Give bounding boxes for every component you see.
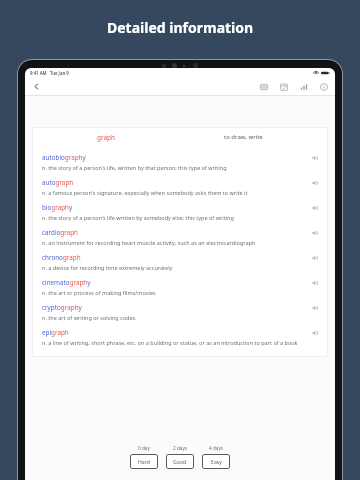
staticText: Hard	[138, 458, 150, 465]
staticText: Detailed information	[107, 18, 254, 37]
button[interactable]: Pronounce biography	[310, 203, 320, 213]
staticText: n. a famous person's signature, especial…	[42, 189, 248, 196]
button[interactable]: cardiograph	[32, 225, 328, 250]
button[interactable]: chronograph	[32, 250, 328, 275]
staticText: autograph	[42, 178, 74, 187]
staticText: Tue Jan 9	[50, 70, 69, 76]
staticText: Good	[173, 458, 187, 465]
staticText: 0 day	[138, 445, 150, 451]
staticText: epigraph	[42, 328, 69, 337]
staticText: cryptography	[42, 303, 82, 312]
button[interactable]: Easy	[202, 454, 230, 469]
staticText: graph	[97, 133, 115, 142]
button[interactable]: biography	[32, 200, 328, 225]
button[interactable]: epigraph	[32, 325, 328, 350]
staticText: n. a device for recording time extremely…	[42, 264, 173, 271]
staticText: n. a line of writing, short phrase, etc.…	[42, 339, 298, 346]
staticText: Easy	[211, 458, 222, 465]
button[interactable]: Pronounce cryptography	[310, 303, 320, 313]
staticText: n. the art of writing or solving codes.	[42, 314, 137, 321]
button[interactable]: Pronounce epigraph	[310, 328, 320, 338]
button[interactable]: Pronounce autograph	[310, 178, 320, 188]
button[interactable]: Schedule	[278, 81, 290, 93]
staticText: autobiography	[42, 153, 86, 162]
staticText: n. the story of a person's life, written…	[42, 164, 227, 171]
staticText: to draw, write	[224, 133, 263, 141]
staticText: biography	[42, 203, 73, 212]
staticText: cinematography	[42, 278, 91, 287]
button[interactable]: Statistics	[298, 81, 310, 93]
staticText: 2 days	[173, 445, 188, 451]
button[interactable]: Back	[30, 80, 43, 93]
button[interactable]: autograph	[32, 175, 328, 200]
button[interactable]: Hard	[130, 454, 158, 469]
button[interactable]: Pronounce cardiograph	[310, 228, 320, 238]
button[interactable]: autobiography	[32, 150, 328, 175]
staticText: n. the story of a person's life written …	[42, 214, 234, 221]
button[interactable]: Pronounce autobiography	[310, 153, 320, 163]
staticText: n. the art or process of making films/mo…	[42, 289, 156, 296]
button[interactable]: Pronounce cinematography	[310, 278, 320, 288]
staticText: 4 days	[209, 445, 224, 451]
button[interactable]: Pronounce chronograph	[310, 253, 320, 263]
button[interactable]: Information	[318, 81, 330, 93]
button[interactable]: Cards	[258, 81, 270, 93]
button[interactable]: Good	[166, 454, 194, 469]
staticText: 9:41 AM	[30, 70, 47, 76]
button[interactable]: cryptography	[32, 300, 328, 325]
staticText: cardiograph	[42, 228, 78, 237]
staticText: chronograph	[42, 253, 81, 262]
staticText: n. an instrument for recording heart mus…	[42, 239, 256, 246]
button[interactable]: cinematography	[32, 275, 328, 300]
